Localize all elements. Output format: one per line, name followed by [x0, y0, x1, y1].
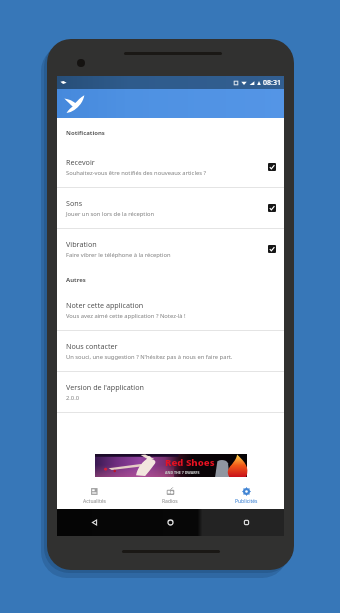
button[interactable]: Recevoir — [57, 147, 284, 187]
staticText: Radios — [162, 498, 178, 505]
button[interactable]: Publicités — [208, 482, 284, 509]
staticText: Red Shoes — [165, 456, 215, 469]
staticText: Publicités — [235, 498, 258, 505]
button[interactable]: Back — [57, 509, 132, 536]
staticText: Actualités — [83, 498, 106, 505]
button[interactable]: Actualités — [57, 482, 132, 509]
button[interactable]: Vibration — [57, 229, 284, 269]
button[interactable]: Version de l'application — [57, 372, 284, 412]
staticText: Notifications — [66, 129, 105, 137]
staticText: Souhaitez-vous être notifiés des nouveau… — [66, 169, 206, 177]
button[interactable]: App logo — [63, 94, 85, 113]
button[interactable]: Sons — [57, 188, 284, 228]
button[interactable]: Noter cette application — [57, 290, 284, 330]
button[interactable]: Advertisement banner — [95, 454, 247, 477]
button[interactable]: Nous contacter — [57, 331, 284, 371]
button[interactable]: Radios — [132, 482, 208, 509]
button[interactable]: Home — [132, 509, 208, 536]
staticText: Recevoir — [66, 157, 95, 167]
staticText: Jouer un son lors de la réception — [66, 210, 155, 218]
button[interactable]: Recents — [208, 509, 284, 536]
staticText: AND THE 7 DWARFS — [165, 470, 200, 475]
staticText: Faire vibrer le téléphone à la réception — [66, 251, 171, 259]
staticText: Vous avez aimé cette application ? Notez… — [66, 312, 186, 320]
staticText: Version de l'application — [66, 382, 144, 392]
staticText: 2.0.0 — [66, 394, 80, 402]
staticText: Noter cette application — [66, 300, 144, 310]
staticText: Un souci, une suggestion ? N'hésitez pas… — [66, 353, 233, 361]
staticText: 08:31 — [263, 78, 281, 88]
staticText: Vibration — [66, 239, 97, 249]
staticText: Sons — [66, 198, 83, 208]
staticText: Autres — [66, 276, 86, 284]
staticText: Nous contacter — [66, 341, 118, 351]
